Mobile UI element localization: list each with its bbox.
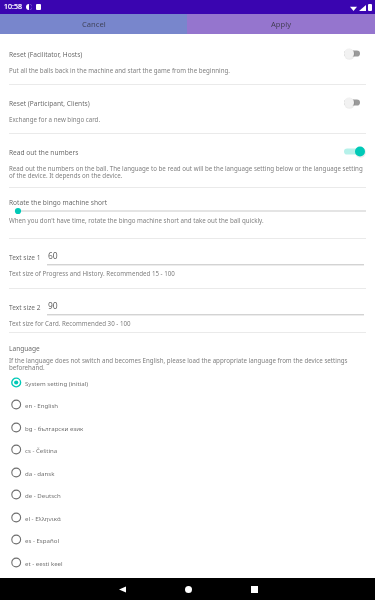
staticText: Language [9,344,40,353]
staticText: If the language does not switch and beco… [9,356,366,372]
button[interactable]: de - Deutsch [9,483,375,506]
staticText: Text size of Progress and History. Recom… [9,269,175,277]
staticText: 60 [48,250,58,262]
button[interactable]: el - Ελληνικά [9,506,375,529]
staticText: en - English [25,401,59,409]
button[interactable] [0,132,375,187]
button[interactable]: es - Español [9,528,375,551]
staticText: Read out the numbers [9,148,79,157]
staticText: el - Ελληνικά [25,514,61,522]
button[interactable]: da - dansk [9,461,375,484]
staticText: When you don't have time, rotate the bin… [9,216,264,224]
staticText: Text size 2 [9,303,41,312]
staticText: Put all the balls back in the machine an… [9,66,230,74]
button[interactable]: Home [168,578,208,600]
button[interactable]: Cancel [0,14,187,34]
staticText: Cancel [82,19,106,29]
staticText: Read out the numbers on the ball. The la… [9,164,366,180]
button[interactable]: bg - български език [9,416,375,439]
staticText: Apply [271,19,292,29]
button[interactable]: cs - Čeština [9,438,375,461]
button[interactable] [0,234,375,288]
staticText: cs - Čeština [25,446,58,454]
staticText: Reset (Facilitator, Hosts) [9,50,83,59]
button[interactable]: Apply [187,14,375,34]
staticText: et - eesti keel [25,559,63,567]
staticText: Text size for Card. Recommended 30 - 100 [9,319,131,327]
staticText: es - Español [25,536,59,544]
button[interactable] [0,83,375,133]
staticText: System setting (initial) [25,379,89,387]
staticText: bg - български език [25,424,84,432]
staticText: da - dansk [25,469,55,477]
staticText: 90 [48,300,58,312]
staticText: Text size 1 [9,253,41,262]
button[interactable]: Back [102,578,142,600]
staticText: 10:58 [4,2,22,12]
button[interactable] [0,34,375,84]
staticText: de - Deutsch [25,491,61,499]
staticText: Rotate the bingo machine short [9,198,108,207]
button[interactable]: et - eesti keel [9,551,375,574]
staticText: Exchange for a new bingo card. [9,115,101,123]
button[interactable]: Recents [234,578,274,600]
button[interactable] [0,284,375,332]
button[interactable] [0,182,375,238]
staticText: Reset (Participant, Clients) [9,99,90,108]
button[interactable]: en - English [9,393,375,416]
button[interactable]: System setting (initial) [9,371,375,394]
